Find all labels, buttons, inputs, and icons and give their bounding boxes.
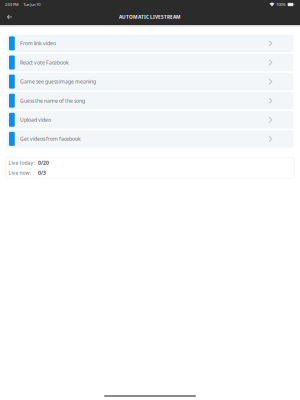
staticText: Get videos from facebook bbox=[20, 135, 81, 142]
staticText: Guess the name of the song bbox=[20, 97, 85, 104]
button[interactable]: Guess the name of the song bbox=[7, 92, 293, 109]
button[interactable]: Game see guess image meaning bbox=[7, 73, 293, 90]
staticText: From link video bbox=[20, 40, 56, 47]
staticText: 0/20 bbox=[38, 159, 49, 166]
button[interactable]: From link video bbox=[7, 35, 293, 52]
staticText: Live now: bbox=[9, 169, 31, 176]
staticText: 100% bbox=[276, 2, 285, 7]
staticText: AUTOMATIC LIVESTREAM bbox=[119, 14, 181, 20]
button[interactable]: Back bbox=[0, 9, 44, 25]
staticText: React vote Facebook bbox=[20, 59, 69, 66]
staticText: 0/3 bbox=[38, 169, 46, 176]
staticText: Tue Jun 10 bbox=[23, 2, 40, 7]
staticText: Upload video bbox=[20, 116, 51, 123]
staticText: Game see guess image meaning bbox=[20, 78, 96, 85]
button[interactable]: Get videos from facebook bbox=[7, 130, 293, 148]
button[interactable]: React vote Facebook bbox=[7, 54, 293, 71]
button[interactable]: Upload video bbox=[7, 111, 293, 129]
staticText: Live today: bbox=[9, 159, 35, 166]
staticText: 2:03 PM bbox=[5, 2, 19, 7]
